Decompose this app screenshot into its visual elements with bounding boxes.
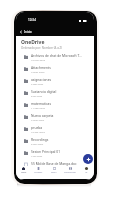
staticText: 55 Molde Base de Manga.doc xyxy=(31,161,77,165)
button[interactable]: Sustancia digital xyxy=(16,87,94,99)
staticText: matematicas xyxy=(31,101,51,105)
staticText: Nueva carpeta xyxy=(31,113,54,117)
staticText: Sesion Principal 01 xyxy=(31,149,61,153)
button[interactable]: Nueva carpeta xyxy=(16,111,94,123)
staticText: 12:34 xyxy=(28,18,36,22)
button[interactable]: matematicas xyxy=(16,99,94,111)
button[interactable]: Atras xyxy=(19,29,32,35)
staticText: 10 nov 2023 xyxy=(31,58,46,61)
staticText: OneDrive xyxy=(21,39,45,46)
button[interactable]: Fotos xyxy=(46,166,62,174)
staticText: Recordings xyxy=(31,137,49,141)
button[interactable]: Recordings xyxy=(16,135,94,147)
staticText: Sustancia digital xyxy=(31,89,57,93)
button[interactable]: Inicio xyxy=(16,166,31,174)
staticText: 11 sep 2023 xyxy=(31,106,46,109)
staticText: 7 jul 2024 xyxy=(31,154,43,157)
staticText: Attachments xyxy=(31,65,51,69)
button[interactable]: Ordenado por: Nombre (A a Z) xyxy=(21,46,63,50)
staticText: Yo xyxy=(85,171,88,174)
staticText: asignaciones xyxy=(31,77,52,81)
staticText: Compartido xyxy=(64,171,76,174)
staticText: Archivos de chat de Microsoft T... xyxy=(31,53,82,57)
button[interactable]: prueba xyxy=(16,123,94,135)
staticText: Archivos xyxy=(34,171,43,174)
staticText: 4 may 2023 xyxy=(31,70,45,73)
button[interactable]: Attachments xyxy=(16,63,94,75)
button[interactable]: Crear xyxy=(83,154,93,164)
staticText: 3 mar 2024 xyxy=(31,118,45,121)
staticText: 6 jun 2024 xyxy=(31,142,44,145)
button[interactable]: Archivos xyxy=(31,166,46,174)
staticText: 15 abr 2024 xyxy=(31,130,45,133)
staticText: prueba xyxy=(31,125,43,129)
staticText: 8 jul 2023 xyxy=(31,94,43,97)
button[interactable]: Yo xyxy=(78,166,94,174)
staticText: Inicio xyxy=(24,30,32,34)
staticText: Fotos xyxy=(51,171,57,174)
staticText: 2 feb 2024 xyxy=(31,82,44,85)
button[interactable]: asignaciones xyxy=(16,75,94,87)
button[interactable]: 55 Molde Base de Manga.doc xyxy=(16,159,94,171)
button[interactable]: Archivos de chat de Microsoft T... xyxy=(16,51,94,63)
staticText: 9 sep 2024 xyxy=(31,166,44,169)
staticText: Inicio xyxy=(21,171,27,174)
button[interactable]: Compartido xyxy=(62,166,78,174)
button[interactable]: Sesion Principal 01 xyxy=(16,147,94,159)
